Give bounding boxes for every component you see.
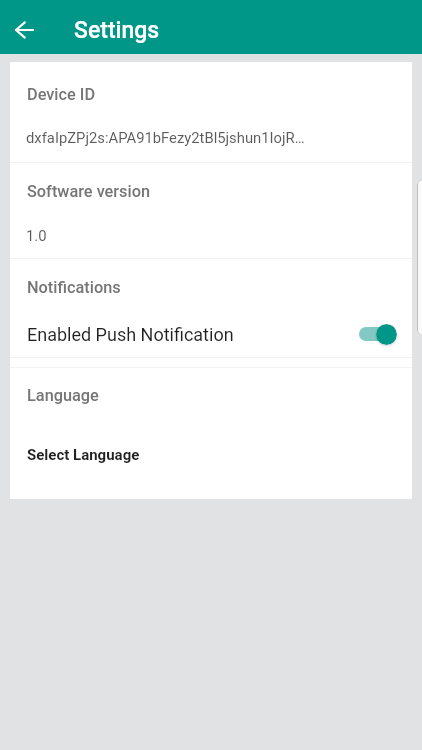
staticText: Enabled Push Notification: [27, 324, 234, 345]
staticText: dxfaIpZPj2s:APA91bFezy2tBl5jshun1IojR…: [26, 129, 326, 146]
staticText: Notifications: [27, 278, 121, 297]
staticText: Settings: [74, 17, 160, 44]
button[interactable]: Device ID: [10, 62, 412, 162]
staticText: Language: [27, 386, 99, 405]
button[interactable]: Enabled Push Notification: [10, 299, 412, 357]
staticText: Select Language: [27, 446, 140, 464]
staticText: Device ID: [27, 85, 96, 104]
staticText: Software version: [27, 182, 151, 201]
button[interactable]: Notifications: [10, 259, 412, 357]
button[interactable]: Enabled Push Notification, on: [352, 319, 402, 349]
button[interactable]: Software version: [10, 163, 412, 258]
staticText: 1.0: [26, 227, 47, 244]
button[interactable]: Language: [10, 368, 412, 499]
button[interactable]: Navigate back: [6, 11, 44, 49]
